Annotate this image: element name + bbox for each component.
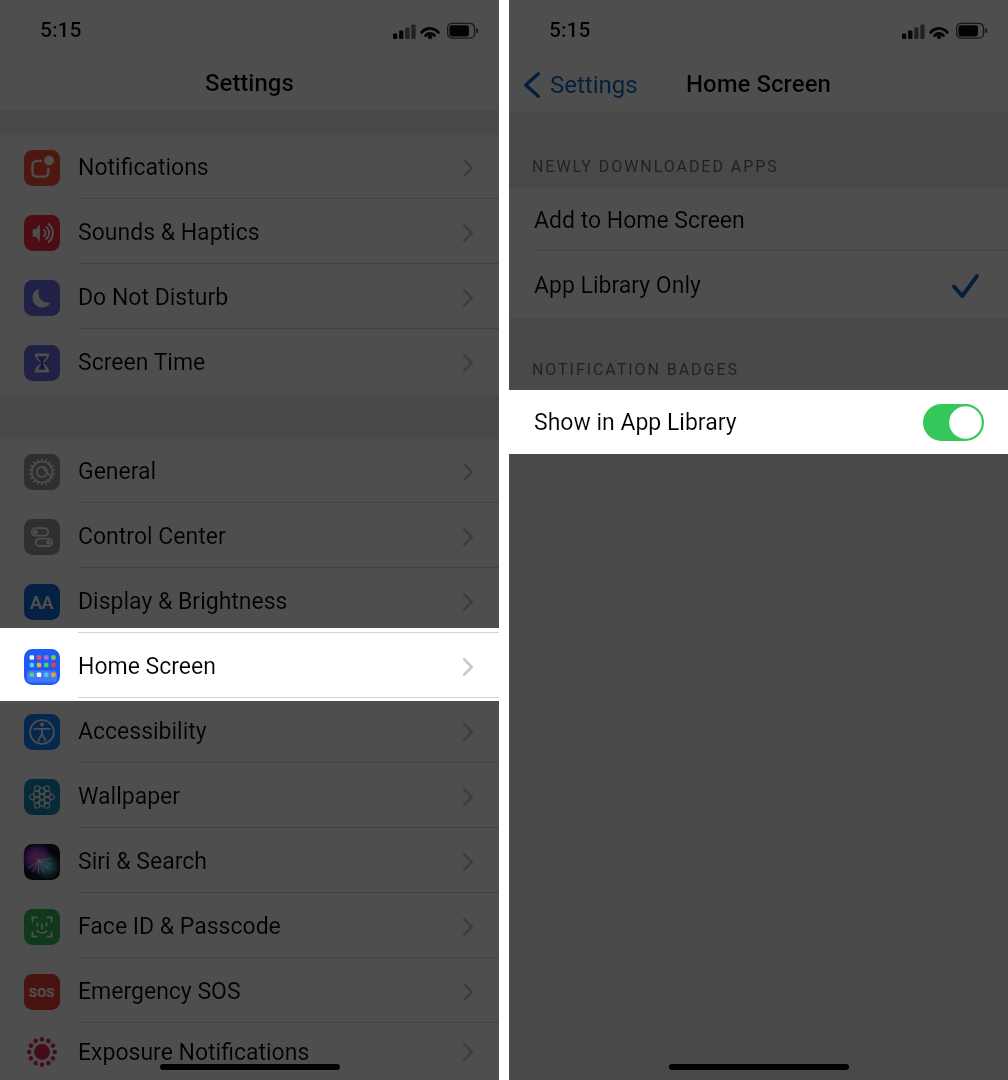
button[interactable]: Siri & Search (0, 829, 499, 894)
staticText: Display & Brightness (78, 588, 463, 615)
staticText: Wallpaper (78, 783, 463, 810)
staticText: Screen Time (78, 349, 463, 376)
staticText: Home Screen (686, 70, 831, 98)
button[interactable]: AA (0, 569, 499, 634)
button[interactable]: App Library Only (509, 253, 1008, 318)
button[interactable]: Notifications (0, 135, 499, 200)
button[interactable]: Sounds & Haptics (0, 200, 499, 265)
staticText: Show in App Library (534, 409, 737, 436)
button[interactable]: Do Not Disturb (0, 265, 499, 330)
other: Back (524, 72, 540, 98)
staticText: Control Center (78, 523, 463, 550)
button[interactable]: Wallpaper (0, 764, 499, 829)
staticText: 5:15 (549, 18, 591, 43)
button[interactable]: SOS (0, 959, 499, 1024)
button[interactable]: Face ID & Passcode (0, 894, 499, 959)
staticText: NOTIFICATION BADGES (532, 360, 739, 379)
staticText: Home Screen (78, 653, 463, 680)
button[interactable]: Screen Time (0, 330, 499, 395)
staticText: Exposure Notifications (78, 1039, 463, 1066)
staticText: Add to Home Screen (534, 207, 745, 234)
button[interactable]: Exposure Notifications (0, 1024, 499, 1080)
staticText: AA (30, 592, 54, 613)
staticText: Settings (550, 71, 638, 99)
button[interactable]: Back (524, 71, 638, 99)
button[interactable]: Show in App Library toggle (923, 404, 984, 441)
staticText: Emergency SOS (78, 978, 463, 1005)
other: Selected (952, 274, 979, 298)
button[interactable]: Show in App Library (509, 390, 1008, 454)
button[interactable]: Accessibility (0, 699, 499, 764)
staticText: Face ID & Passcode (78, 913, 463, 940)
button[interactable]: Control Center (0, 504, 499, 569)
staticText: 5:15 (40, 18, 82, 43)
staticText: Notifications (78, 154, 463, 181)
staticText: Accessibility (78, 718, 463, 745)
button[interactable]: Home Screen (0, 634, 499, 699)
staticText: Settings (205, 69, 294, 97)
staticText: Sounds & Haptics (78, 219, 463, 246)
staticText: SOS (29, 985, 55, 1000)
button[interactable]: Add to Home Screen (509, 188, 1008, 253)
staticText: Siri & Search (78, 848, 463, 875)
staticText: App Library Only (534, 272, 701, 299)
staticText: NEWLY DOWNLOADED APPS (532, 157, 779, 176)
button[interactable]: General (0, 439, 499, 504)
staticText: Do Not Disturb (78, 284, 463, 311)
staticText: General (78, 458, 463, 485)
